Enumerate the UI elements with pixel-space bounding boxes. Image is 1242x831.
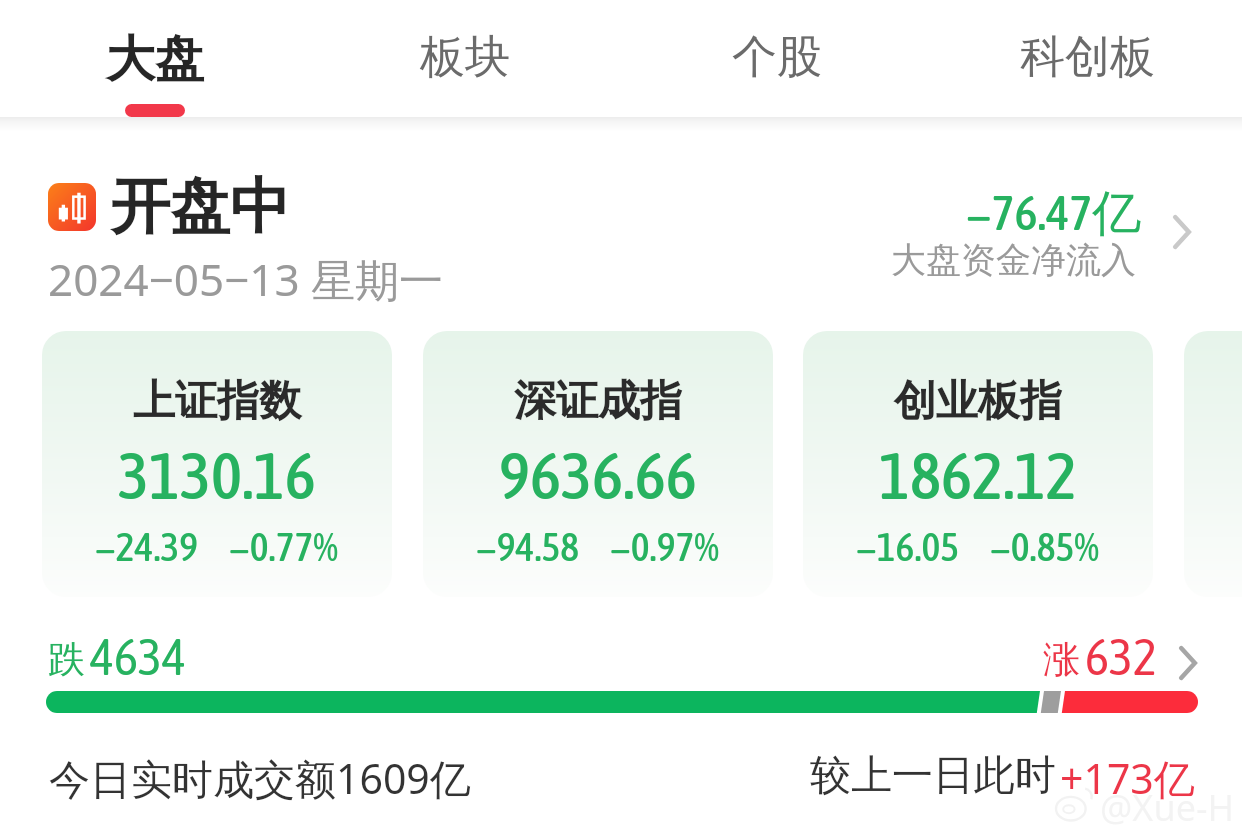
- staticText: 深证成指: [514, 375, 682, 428]
- button[interactable]: 中小板指: [1184, 331, 1242, 597]
- staticText: 个股: [732, 29, 822, 86]
- staticText: 1862.12: [879, 437, 1077, 513]
- staticText: 上证指数: [133, 375, 301, 428]
- button[interactable]: 涨: [1040, 626, 1198, 684]
- staticText: −16.05: [856, 524, 960, 570]
- button[interactable]: 板块: [355, 0, 575, 118]
- staticText: 今日实时成交额1609亿: [49, 750, 471, 806]
- staticText: −76.47亿: [966, 183, 1142, 245]
- staticText: 涨: [1043, 636, 1080, 683]
- staticText: 跌: [48, 636, 85, 683]
- staticText: +173亿: [1060, 750, 1195, 806]
- other: 涨跌详情: [1179, 646, 1197, 680]
- button[interactable]: 创业板指: [803, 331, 1153, 597]
- staticText: 3130.16: [118, 437, 316, 513]
- staticText: @Xue-H: [1100, 783, 1235, 827]
- button[interactable]: −76.47亿: [870, 172, 1210, 290]
- staticText: −0.97%: [610, 524, 720, 570]
- staticText: 4634: [90, 627, 186, 685]
- staticText: 632: [1085, 627, 1157, 685]
- button[interactable]: 上证指数: [42, 331, 392, 597]
- staticText: 大盘: [106, 29, 204, 91]
- staticText: 9636.66: [499, 437, 697, 513]
- staticText: 开盘中: [110, 169, 290, 245]
- other: 资金流向详情: [1173, 215, 1191, 249]
- staticText: −94.58: [476, 524, 580, 570]
- button[interactable]: 跌: [48, 626, 188, 684]
- staticText: 大盘资金净流入: [891, 238, 1136, 282]
- button[interactable]: 大盘: [45, 0, 265, 118]
- staticText: 科创板: [1020, 29, 1155, 86]
- staticText: 创业板指: [894, 375, 1062, 428]
- staticText: 板块: [420, 29, 510, 86]
- button[interactable]: 科创板: [977, 0, 1197, 118]
- staticText: −0.85%: [990, 524, 1100, 570]
- staticText: −24.39: [95, 524, 199, 570]
- staticText: 较上一日此时: [810, 750, 1056, 802]
- staticText: −0.77%: [229, 524, 339, 570]
- button[interactable]: 个股: [667, 0, 887, 118]
- staticText: 2024−05−13 星期一: [48, 249, 444, 309]
- button[interactable]: 深证成指: [423, 331, 773, 597]
